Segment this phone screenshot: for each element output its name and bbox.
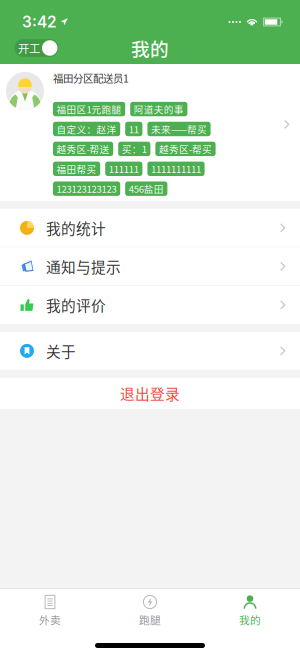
staticText: 越秀区-帮买 bbox=[159, 142, 212, 155]
staticText: 1111111111 bbox=[151, 162, 201, 175]
button[interactable]: 退出登录 bbox=[0, 378, 300, 409]
staticText: 自定义：赵洋 bbox=[57, 122, 117, 136]
staticText: 我的 bbox=[239, 613, 261, 626]
button[interactable]: 关于 bbox=[0, 332, 300, 370]
button[interactable]: 福田分区配送员1 bbox=[0, 64, 300, 201]
button[interactable]: 我的评价 bbox=[0, 286, 300, 324]
staticText: 我的 bbox=[131, 34, 169, 61]
staticText: 买：1 bbox=[122, 142, 147, 155]
button[interactable]: 我的 bbox=[200, 589, 300, 631]
staticText: 开工 bbox=[18, 41, 40, 55]
staticText: 11 bbox=[129, 122, 139, 136]
staticText: 456盐田 bbox=[129, 182, 164, 195]
button[interactable]: 开工 bbox=[14, 39, 59, 57]
staticText: 111111 bbox=[109, 162, 139, 175]
staticText: 退出登录 bbox=[120, 383, 180, 404]
button[interactable]: 我的统计 bbox=[0, 209, 300, 247]
staticText: 我的统计 bbox=[46, 217, 106, 238]
staticText: 关于 bbox=[46, 340, 76, 361]
staticText: 123123123123 bbox=[57, 182, 117, 195]
button[interactable]: 跑腿 bbox=[100, 589, 200, 631]
staticText: 外卖 bbox=[39, 613, 61, 626]
staticText: 福田帮买 bbox=[57, 162, 97, 175]
button[interactable]: 通知与提示 bbox=[0, 247, 300, 285]
staticText: 未来——帮买 bbox=[151, 122, 207, 136]
staticText: 福田区1元跑腿 bbox=[57, 102, 122, 116]
staticText: 阿道夫的事 bbox=[134, 102, 184, 116]
staticText: 3:42 bbox=[22, 13, 57, 31]
staticText: 我的评价 bbox=[46, 294, 106, 315]
staticText: 福田分区配送员1 bbox=[53, 71, 129, 85]
staticText: 通知与提示 bbox=[46, 256, 121, 277]
button[interactable]: 外卖 bbox=[0, 589, 100, 631]
staticText: 跑腿 bbox=[139, 613, 161, 626]
staticText: 越秀区-帮送 bbox=[57, 142, 110, 155]
